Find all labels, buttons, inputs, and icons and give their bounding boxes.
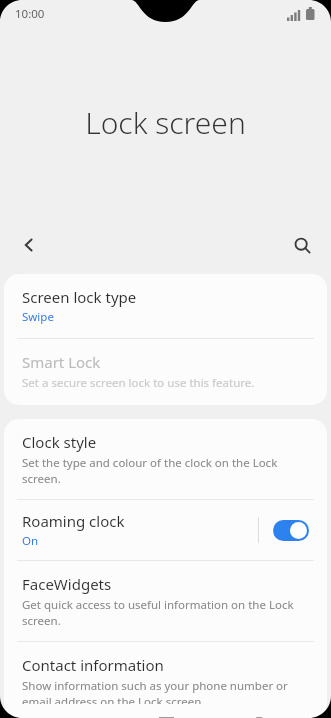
- staticText: Smart Lock: [22, 352, 101, 372]
- staticText: 10:00: [15, 6, 45, 22]
- staticText: Swipe: [22, 309, 54, 325]
- staticText: Set the type and colour of the clock on …: [22, 455, 313, 486]
- staticText: Get quick access to useful information o…: [22, 597, 313, 628]
- button[interactable]: Smart Lock: [4, 339, 327, 405]
- button[interactable]: Roaming clock: [4, 500, 327, 560]
- button[interactable]: Back: [8, 224, 50, 266]
- staticText: FaceWidgets: [22, 574, 112, 594]
- staticText: On: [22, 533, 39, 549]
- staticText: Set a secure screen lock to use this fea…: [22, 375, 255, 391]
- button[interactable]: Clock style: [4, 419, 327, 499]
- button[interactable]: Roaming clock toggle: [273, 520, 309, 541]
- button[interactable]: Search: [281, 224, 323, 266]
- staticText: Show information such as your phone numb…: [22, 678, 313, 704]
- staticText: Clock style: [22, 432, 97, 452]
- button[interactable]: FaceWidgets: [4, 561, 327, 641]
- staticText: Contact information: [22, 655, 164, 675]
- staticText: Lock screen: [85, 102, 246, 143]
- button[interactable]: Contact information: [4, 642, 327, 718]
- staticText: Screen lock type: [22, 287, 137, 307]
- staticText: Roaming clock: [22, 511, 125, 531]
- button[interactable]: Screen lock type: [4, 274, 327, 338]
